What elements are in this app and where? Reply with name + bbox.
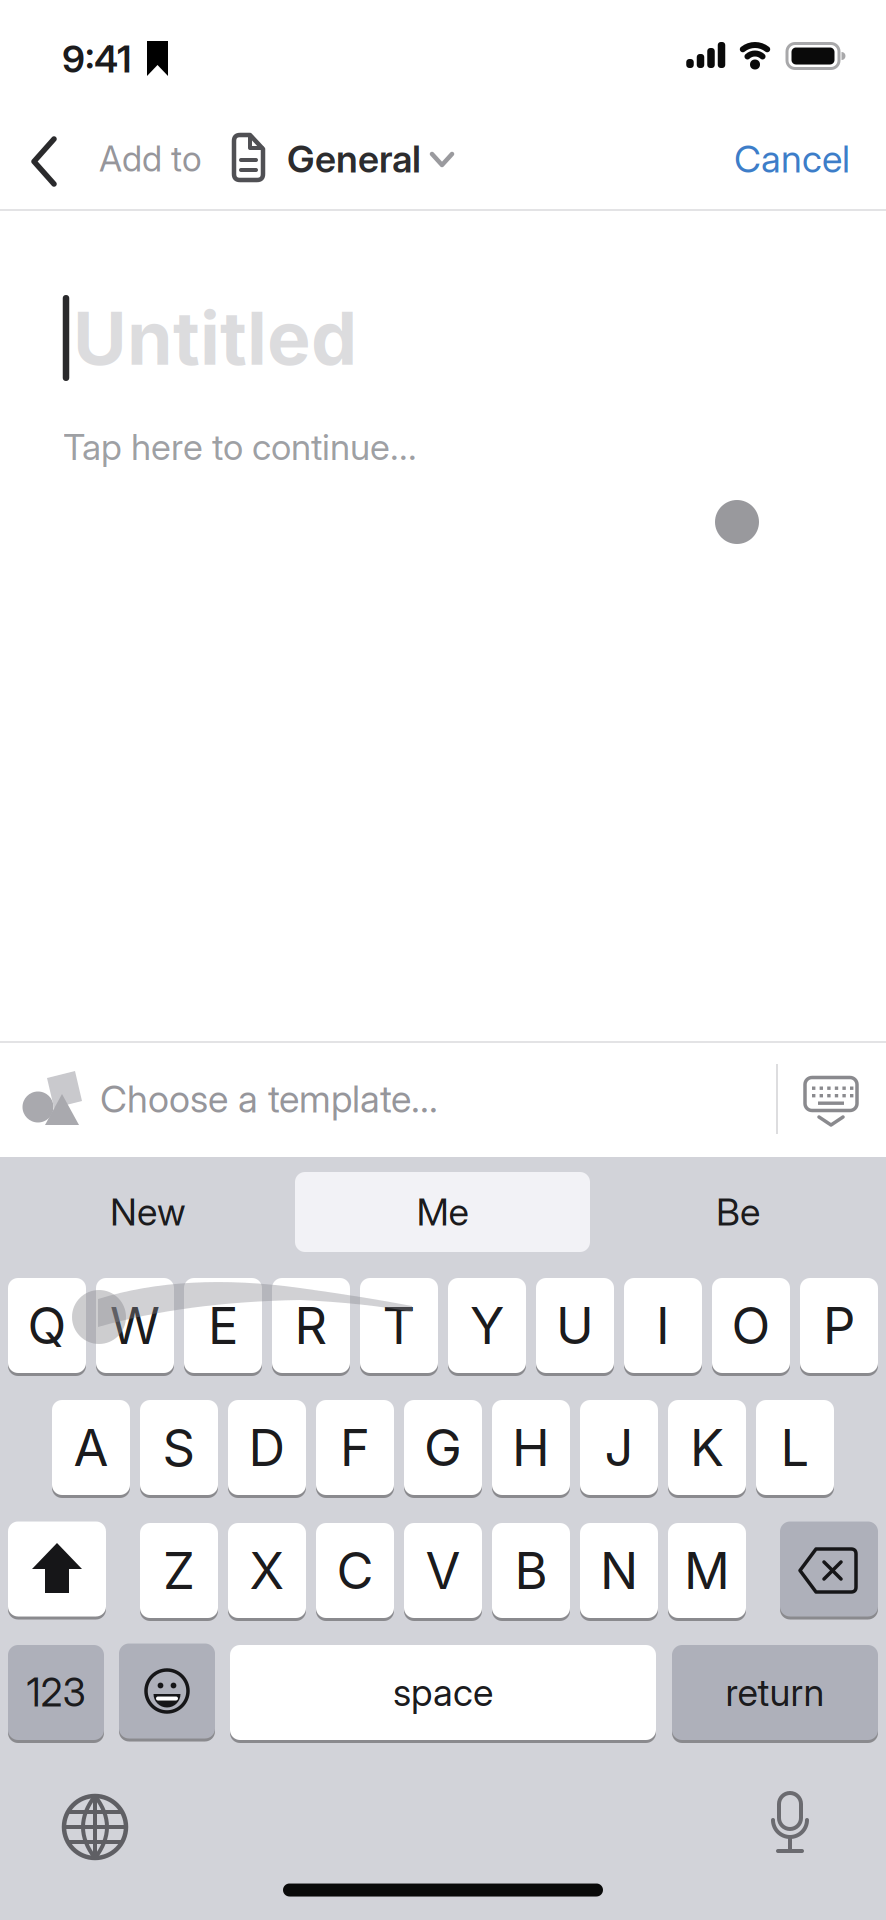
button[interactable]: Cancel [707,124,877,194]
staticText: New [110,1190,186,1234]
button[interactable]: V [404,1523,482,1621]
button[interactable]: Me [295,1172,590,1252]
staticText: K [690,1418,724,1477]
staticText: W [110,1296,160,1355]
button[interactable]: R [272,1278,350,1376]
button[interactable]: N [580,1523,658,1621]
staticText: S [162,1418,195,1477]
staticText: Y [470,1296,504,1355]
staticText: T [382,1296,415,1355]
button[interactable]: X [228,1523,306,1621]
staticText: L [780,1418,809,1477]
staticText: P [823,1296,855,1355]
button[interactable]: T [360,1278,438,1376]
staticText: F [340,1418,370,1477]
button[interactable]: C [316,1523,394,1621]
button[interactable]: G [404,1400,482,1498]
button[interactable]: Next keyboard [55,1787,135,1867]
button[interactable]: U [536,1278,614,1376]
staticText: Q [27,1296,66,1355]
staticText: Be [716,1190,760,1234]
button[interactable]: Q [8,1278,86,1376]
button[interactable]: New [8,1171,288,1253]
button[interactable]: Add to [80,119,460,199]
button[interactable]: Y [448,1278,526,1376]
staticText: 9:41 [62,37,132,81]
staticText: M [684,1541,730,1600]
staticText: R [294,1296,327,1355]
button[interactable]: W [96,1278,174,1376]
button[interactable]: M [668,1523,746,1621]
staticText: E [208,1296,238,1355]
button[interactable]: Emoji [119,1643,215,1741]
staticText: A [73,1418,108,1477]
staticText: G [424,1418,462,1477]
button[interactable]: 123 [8,1645,104,1743]
staticText: Z [163,1541,195,1600]
button[interactable]: Shift [8,1521,106,1619]
staticText: V [425,1541,460,1600]
button[interactable]: S [140,1400,218,1498]
button[interactable]: Dismiss keyboard [781,1049,881,1149]
staticText: H [512,1418,550,1477]
staticText: X [249,1541,284,1600]
button[interactable]: Delete [780,1521,878,1619]
staticText: Me [416,1190,468,1234]
staticText: 123 [26,1670,85,1715]
button[interactable]: Be [598,1171,878,1253]
staticText: B [514,1541,547,1600]
button[interactable]: Z [140,1523,218,1621]
staticText: O [731,1296,770,1355]
button[interactable]: F [316,1400,394,1498]
staticText: return [725,1670,824,1714]
button[interactable]: K [668,1400,746,1498]
staticText: C [336,1541,373,1600]
button[interactable]: H [492,1400,570,1498]
button[interactable]: Dictate [750,1784,830,1864]
button[interactable]: E [184,1278,262,1376]
button[interactable]: Choose a template... [0,1042,770,1156]
staticText: Choose a template... [100,1077,438,1121]
staticText: Untitled [73,295,357,381]
button[interactable]: P [800,1278,878,1376]
staticText: Tap here to continue... [63,426,417,468]
staticText: Cancel [734,137,850,181]
button[interactable]: L [756,1400,834,1498]
button[interactable]: J [580,1400,658,1498]
button[interactable]: A [52,1400,130,1498]
button[interactable]: Back [14,126,74,196]
staticText: N [600,1541,638,1600]
button[interactable]: I [624,1278,702,1376]
button[interactable]: return [672,1645,878,1743]
staticText: U [556,1296,594,1355]
staticText: J [604,1418,633,1477]
staticText: I [656,1296,670,1355]
button[interactable]: D [228,1400,306,1498]
staticText: space [393,1670,493,1714]
button[interactable]: space [230,1645,656,1743]
staticText: Add to [99,139,202,179]
button[interactable]: O [712,1278,790,1376]
button[interactable]: B [492,1523,570,1621]
staticText: General [287,137,421,181]
staticText: D [248,1418,285,1477]
